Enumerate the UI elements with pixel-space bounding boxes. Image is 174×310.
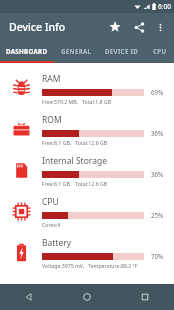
staticText: Cores:4 [42,221,61,228]
button[interactable]: CPU [0,191,174,232]
staticText: CPU [153,47,167,55]
button[interactable]: RAM [0,68,174,109]
button[interactable]: GENERAL [54,41,98,61]
button[interactable]: CPU [146,41,174,61]
staticText: Voltage:3975 mV, Temperature:88.2 °F [42,262,138,269]
staticText: 36% [151,170,164,178]
staticText: DASHBOARD [6,47,48,55]
staticText: 6:00 [158,2,171,11]
staticText: 25% [151,211,164,219]
button[interactable]: ROM [0,109,174,150]
staticText: Battery [42,237,72,249]
staticText: 69% [151,88,164,96]
button[interactable]: Recents [116,284,174,310]
staticText: DEVICE ID [105,47,139,55]
button[interactable]: More options [151,18,169,36]
staticText: Free:8.1 GB, Total:12.6 GB [42,139,108,146]
staticText: Free:579.2 MB, Total:1.8 GB [42,98,112,105]
button[interactable]: Favorite [104,16,126,38]
button[interactable]: Internal Storage [0,150,174,191]
staticText: CPU [42,196,59,208]
staticText: RAM [42,73,61,85]
staticText: Internal Storage [42,155,107,167]
staticText: ROM [42,114,62,126]
staticText: 70% [151,252,164,260]
button[interactable]: Share [128,16,150,38]
button[interactable]: DASHBOARD [0,41,54,61]
staticText: Device Info [9,20,66,34]
button[interactable]: Back [0,284,58,310]
button[interactable]: Home [58,284,116,310]
button[interactable]: DEVICE ID [98,41,146,61]
button[interactable]: Battery [0,232,174,273]
staticText: 36% [151,129,164,137]
staticText: GENERAL [61,47,92,55]
staticText: Free:8.1 GB, Total:12.6 GB [42,180,108,187]
